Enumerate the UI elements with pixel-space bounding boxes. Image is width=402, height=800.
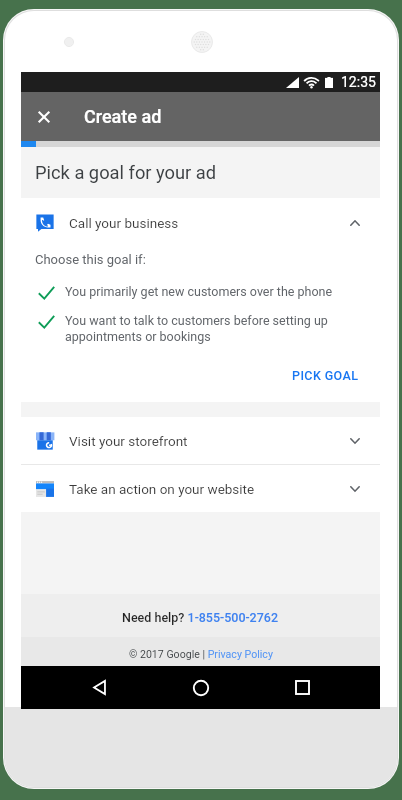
button[interactable]: Home — [177, 666, 225, 709]
button[interactable]: Recent apps — [278, 666, 326, 709]
staticText: Visit your storefront — [69, 433, 188, 449]
button[interactable]: Need help? 1-855-500-2762 — [21, 594, 380, 637]
button[interactable]: Take an action on your website — [21, 465, 380, 512]
staticText: PICK GOAL — [292, 368, 359, 383]
button[interactable]: Call your business — [21, 198, 380, 248]
staticText: Call your business — [69, 215, 179, 231]
staticText: Create ad — [84, 106, 162, 127]
staticText: Pick a goal for your ad — [35, 162, 217, 183]
staticText: Take an action on your website — [69, 481, 255, 497]
button[interactable]: PICK GOAL — [284, 361, 367, 390]
button[interactable]: Close — [21, 92, 66, 141]
staticText: You primarily get new customers over the… — [65, 284, 333, 299]
staticText: 12:35 — [341, 74, 376, 90]
staticText: Choose this goal if: — [35, 252, 146, 267]
button[interactable]: Visit your storefront — [21, 417, 380, 464]
button[interactable]: Back — [75, 666, 123, 709]
staticText: Need help? 1-855-500-2762 — [122, 610, 279, 625]
staticText: © 2017 Google | Privacy Policy — [129, 648, 273, 660]
staticText: You want to talk to customers before set… — [65, 313, 328, 344]
